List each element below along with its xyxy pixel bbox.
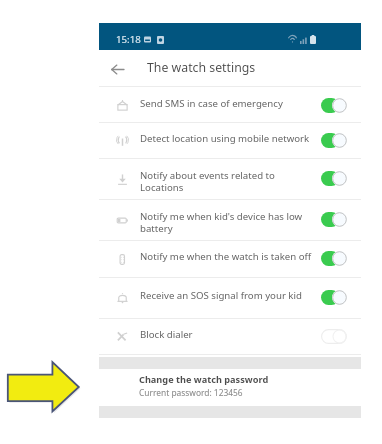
staticText: Notify me when the watch is taken off [140,250,312,263]
staticText: Detect location using mobile network [140,132,310,145]
button[interactable]: Receive an SOS signal from your kid [99,277,361,318]
staticText: Send SMS in case of emergency [140,97,283,110]
button[interactable]: Detect location using mobile network [99,122,361,158]
staticText: Notify about events related to Locations [140,169,275,194]
button[interactable]: Send SMS in case of emergency [99,87,361,123]
button[interactable]: Back [103,55,131,83]
staticText: Block dialer [140,328,193,341]
staticText: Change the watch password [139,373,269,386]
staticText: Receive an SOS signal from your kid [140,289,302,302]
button[interactable]: Notify me when kid's device has low batt… [99,199,361,240]
button[interactable]: Change the watch password [99,369,361,406]
button[interactable]: Notify me when the watch is taken off [99,240,361,277]
staticText: Notify me when kid's device has low batt… [140,210,303,235]
button[interactable]: Notify about events related to Locations [99,158,361,199]
staticText: 15:18 [116,33,141,46]
staticText: Current password: 123456 [139,387,243,398]
button[interactable]: Block dialer [99,318,361,354]
staticText: The watch settings [147,59,256,76]
